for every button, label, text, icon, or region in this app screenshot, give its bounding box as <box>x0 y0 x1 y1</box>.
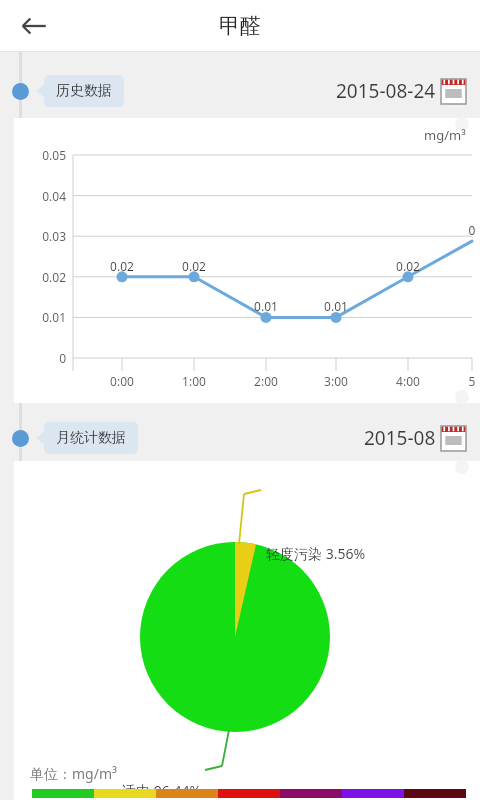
staticText: 0.05 <box>20 147 66 163</box>
button[interactable]: 历史数据 <box>36 75 124 107</box>
staticText: 4:00 <box>386 373 430 389</box>
staticText: 0.02 <box>100 258 144 274</box>
staticText: 0.02 <box>20 269 66 285</box>
button[interactable]: 月统计数据 <box>36 422 138 454</box>
staticText: 甲醛 <box>219 13 261 39</box>
staticText: 2:00 <box>244 373 288 389</box>
button[interactable]: 2015-08-24 <box>336 78 466 104</box>
button[interactable]: Back <box>10 2 58 50</box>
staticText: mg/m³ <box>424 126 466 144</box>
staticText: 0 <box>450 222 480 238</box>
button[interactable]: 2015-08 <box>364 425 466 451</box>
staticText: 月统计数据 <box>56 429 126 447</box>
staticText: 适中 96.44% <box>122 781 202 800</box>
staticText: 单位：mg/m³ <box>30 764 117 783</box>
staticText: 0.01 <box>20 309 66 325</box>
other: Select date <box>441 426 466 451</box>
staticText: 1:00 <box>172 373 216 389</box>
staticText: 3:00 <box>314 373 358 389</box>
staticText: 5 <box>450 373 480 389</box>
staticText: 0:00 <box>100 373 144 389</box>
staticText: 0 <box>20 350 66 366</box>
staticText: 0.04 <box>20 188 66 204</box>
staticText: 2015-08-24 <box>336 78 436 104</box>
staticText: 0.01 <box>314 298 358 314</box>
staticText: 0.02 <box>172 258 216 274</box>
staticText: 0.02 <box>386 258 430 274</box>
staticText: 0.03 <box>20 228 66 244</box>
staticText: 0.01 <box>244 298 288 314</box>
staticText: 历史数据 <box>56 82 112 100</box>
staticText: 轻度污染 3.56% <box>266 544 366 563</box>
other: Select date <box>441 79 466 104</box>
staticText: 2015-08 <box>364 425 436 451</box>
